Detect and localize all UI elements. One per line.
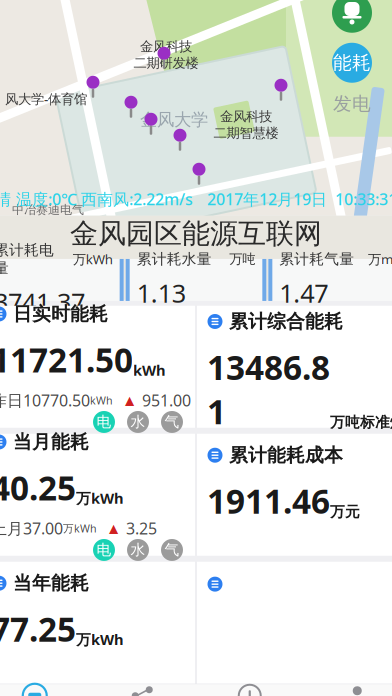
staticText: 金风园区能源互联网 [70, 217, 322, 251]
staticText: 万吨标准煤 [330, 413, 392, 431]
staticText: 金风科技 [140, 38, 192, 55]
staticText: 万吨 [229, 251, 255, 267]
button[interactable]: 远程控制 [196, 684, 303, 696]
staticText: 累计能耗成本 [229, 444, 343, 467]
staticText: 二期研发楼 [133, 55, 198, 71]
staticText: 1.47 [279, 276, 328, 310]
staticText: 上月37.00 [0, 518, 63, 539]
staticText: 万kWh [63, 521, 97, 535]
staticText: 金风大学 [140, 109, 208, 130]
staticText: 10:33:31 [327, 188, 392, 210]
button[interactable]: 综合管理 [88, 684, 196, 696]
staticText: ▲ [113, 393, 142, 407]
staticText: kWh [133, 360, 166, 380]
button[interactable]: 个人中心 [303, 684, 392, 696]
staticText: 万kWh [76, 629, 124, 649]
staticText: 951.00 [142, 390, 191, 411]
staticText: 累计耗电量 [0, 241, 54, 277]
button[interactable]: 当月能耗 [0, 434, 195, 556]
staticText: 日实时能耗 [13, 302, 108, 325]
button[interactable]: 累计能耗成本 [197, 434, 392, 556]
staticText: 水 [130, 541, 145, 559]
staticText: 3741.37 [0, 285, 85, 319]
staticText: 万kWh [76, 488, 124, 508]
staticText: 气 [164, 541, 179, 559]
staticText: 3.25 [126, 518, 157, 539]
button[interactable]: 能耗 [332, 43, 372, 83]
staticText: ▲ [97, 521, 126, 535]
staticText: 万kWh [73, 250, 113, 268]
staticText: 电 [96, 541, 111, 559]
staticText: 13486.81 [207, 345, 330, 433]
button[interactable]: 当年能耗 [0, 562, 195, 684]
staticText: 能耗 [333, 51, 371, 74]
staticText: 水 [130, 413, 145, 431]
button[interactable]: 日实时能耗 [0, 306, 195, 428]
button[interactable]: 累计综合能耗 [197, 306, 392, 428]
staticText: 累计耗水量 [137, 250, 212, 268]
staticText: 11721.50 [0, 337, 133, 382]
staticText: 发电 [333, 92, 371, 115]
staticText: 万元 [330, 503, 360, 521]
staticText: 77.25 [0, 607, 76, 651]
staticText: 电 [96, 413, 111, 431]
staticText: 气 [164, 413, 179, 431]
button[interactable]: 首页数据 [0, 684, 88, 696]
staticText: 1911.46 [207, 479, 330, 523]
staticText: 中冶赛迪电气 [12, 202, 84, 217]
staticText: 当年能耗 [13, 572, 89, 595]
staticText: 累计耗气量 [279, 250, 354, 268]
staticText: 40.25 [0, 465, 76, 510]
button[interactable] [197, 562, 392, 684]
staticText: 1.13 [137, 276, 186, 310]
staticText: kWh [90, 393, 113, 407]
staticText: 累计综合能耗 [229, 310, 343, 333]
staticText: 当月能耗 [13, 430, 89, 453]
staticText: 2017年12月19日 [207, 188, 327, 210]
staticText: 晴 温度:0℃ 西南风:2.22m/s [0, 188, 193, 210]
staticText: 昨日10770.50 [0, 390, 90, 411]
staticText: 风大学-体育馆 [5, 90, 87, 108]
staticText: 万m³ [368, 250, 392, 268]
staticText: 金风科技 [220, 108, 272, 125]
button[interactable]: 告警通知 [332, 0, 372, 33]
staticText: 二期智慧楼 [213, 125, 278, 141]
button[interactable]: 发电 [332, 93, 372, 115]
